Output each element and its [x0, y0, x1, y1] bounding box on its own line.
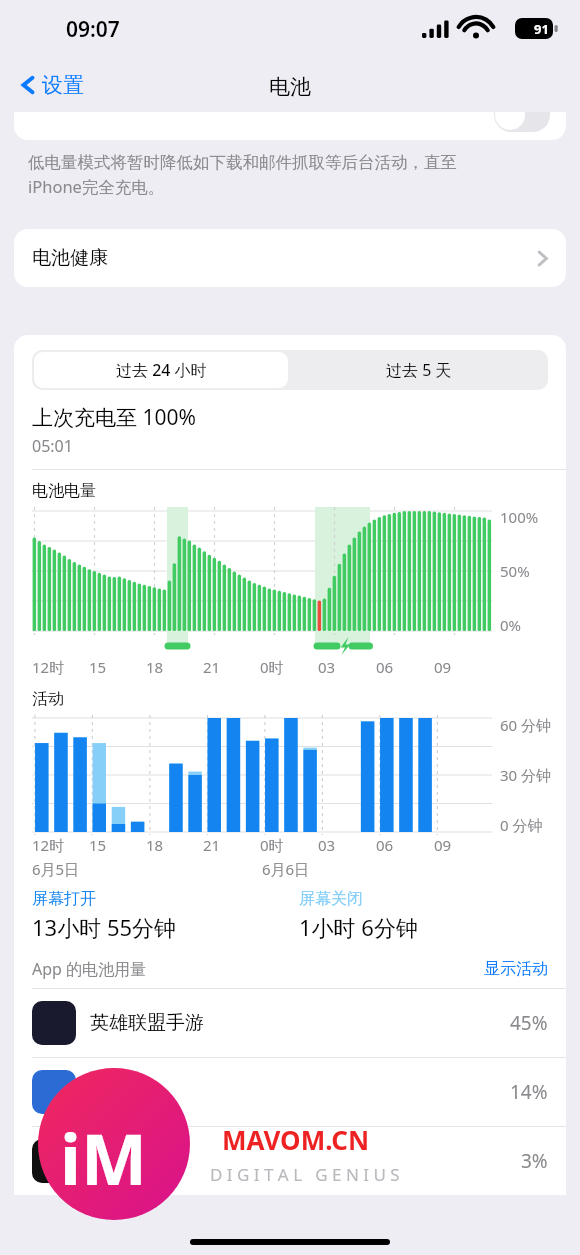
- staticText: 过去 24 小时: [116, 359, 207, 381]
- staticText: 0 分钟: [500, 815, 543, 835]
- staticText: App 的电池用量: [32, 958, 147, 980]
- button[interactable]: 显示活动: [484, 959, 548, 979]
- staticText: 03: [318, 657, 336, 677]
- staticText: 低电量模式将暂时降低如下载和邮件抓取等后台活动，直至 iPhone完全充电。: [28, 152, 457, 198]
- staticText: 电池健康: [32, 246, 108, 270]
- staticText: 09:07: [66, 15, 120, 44]
- button[interactable]: 过去 5 天: [290, 350, 548, 390]
- staticText: 09: [434, 835, 452, 855]
- staticText: D I G I T A L G E N I U S: [210, 1163, 400, 1186]
- button[interactable]: [14, 112, 566, 140]
- staticText: 45%: [510, 1010, 548, 1036]
- staticText: 0时: [260, 657, 284, 677]
- staticText: 12时: [32, 835, 65, 855]
- staticText: 03: [318, 835, 336, 855]
- staticText: MAVOM.CN: [222, 1122, 370, 1157]
- staticText: 14%: [510, 1079, 548, 1105]
- staticText: 15: [89, 835, 107, 855]
- staticText: 6月6日: [262, 859, 310, 879]
- staticText: 100%: [500, 507, 539, 527]
- staticText: 12时: [32, 657, 65, 677]
- staticText: 06: [376, 657, 394, 677]
- button[interactable]: 抖音: [14, 1127, 566, 1195]
- staticText: 英雄联盟手游: [90, 1011, 204, 1035]
- staticText: 电池: [269, 74, 311, 100]
- button[interactable]: 过去 24 小时: [34, 352, 288, 388]
- button[interactable]: 电池健康: [14, 229, 566, 287]
- staticText: 电池电量: [32, 481, 96, 501]
- staticText: 活动: [32, 689, 64, 709]
- button[interactable]: 英雄联盟手游: [14, 989, 566, 1057]
- staticText: 屏幕关闭: [299, 889, 363, 909]
- staticText: 18: [146, 657, 164, 677]
- staticText: 13小时 55分钟: [32, 912, 177, 942]
- staticText: iM: [60, 1110, 147, 1205]
- staticText: 3%: [521, 1148, 548, 1174]
- staticText: 91: [534, 20, 549, 38]
- staticText: 屏幕打开: [32, 889, 96, 909]
- staticText: 18: [146, 835, 164, 855]
- staticText: 60 分钟: [500, 715, 552, 735]
- staticText: 06: [376, 835, 394, 855]
- staticText: 05:01: [32, 435, 73, 457]
- staticText: 50%: [500, 561, 530, 581]
- staticText: 15: [89, 657, 107, 677]
- button[interactable]: 贴吧: [14, 1058, 566, 1126]
- staticText: 21: [203, 657, 221, 677]
- staticText: 1小时 6分钟: [299, 912, 418, 942]
- staticText: 上次充电至 100%: [32, 403, 196, 432]
- staticText: 6月5日: [32, 859, 80, 879]
- staticText: 抖音: [90, 1149, 128, 1173]
- staticText: 09: [434, 657, 452, 677]
- staticText: 0%: [500, 615, 522, 635]
- staticText: 30 分钟: [500, 765, 552, 785]
- staticText: 过去 5 天: [386, 359, 452, 381]
- staticText: 21: [203, 835, 221, 855]
- staticText: 0时: [260, 835, 284, 855]
- button[interactable]: 设置: [16, 70, 88, 100]
- staticText: 设置: [42, 72, 84, 98]
